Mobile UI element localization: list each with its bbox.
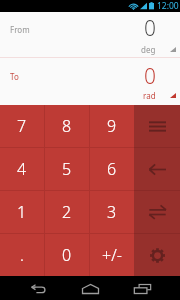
button[interactable]: Recent apps	[128, 278, 156, 300]
staticText: From	[10, 24, 30, 35]
staticText: 0	[62, 244, 72, 266]
button[interactable]: 7	[0, 105, 44, 147]
staticText: 6	[107, 158, 117, 180]
button[interactable]: Settings	[134, 234, 180, 276]
staticText: 0	[144, 62, 156, 91]
button[interactable]: +/-	[90, 234, 134, 276]
staticText: To	[10, 71, 19, 82]
staticText: 7	[17, 115, 27, 137]
staticText: 12:00	[157, 0, 179, 12]
button[interactable]: 4	[0, 148, 44, 190]
staticText: +/-	[102, 244, 122, 266]
staticText: 2	[62, 201, 72, 223]
button[interactable]: To	[0, 58, 180, 105]
staticText: 9	[107, 115, 117, 137]
staticText: 4	[17, 158, 27, 180]
staticText: deg	[141, 44, 156, 55]
button[interactable]: 1	[0, 191, 44, 233]
button[interactable]: 5	[45, 148, 89, 190]
button[interactable]: 9	[90, 105, 134, 147]
staticText: rad	[143, 90, 156, 101]
button[interactable]: 8	[45, 105, 89, 147]
staticText: 8	[62, 115, 72, 137]
button[interactable]: 2	[45, 191, 89, 233]
button[interactable]: Home	[76, 278, 104, 300]
staticText: 0	[144, 14, 156, 43]
button[interactable]: 0	[45, 234, 89, 276]
staticText: .	[20, 244, 24, 266]
button[interactable]: 3	[90, 191, 134, 233]
button[interactable]: 6	[90, 148, 134, 190]
button[interactable]: Back	[24, 278, 52, 300]
staticText: 3	[107, 201, 117, 223]
staticText: 5	[62, 158, 72, 180]
staticText: 1	[17, 201, 27, 223]
button[interactable]: Menu	[134, 105, 180, 147]
button[interactable]: From	[0, 12, 180, 57]
button[interactable]: .	[0, 234, 44, 276]
button[interactable]: Swap units	[134, 191, 180, 233]
button[interactable]: Backspace	[134, 148, 180, 190]
